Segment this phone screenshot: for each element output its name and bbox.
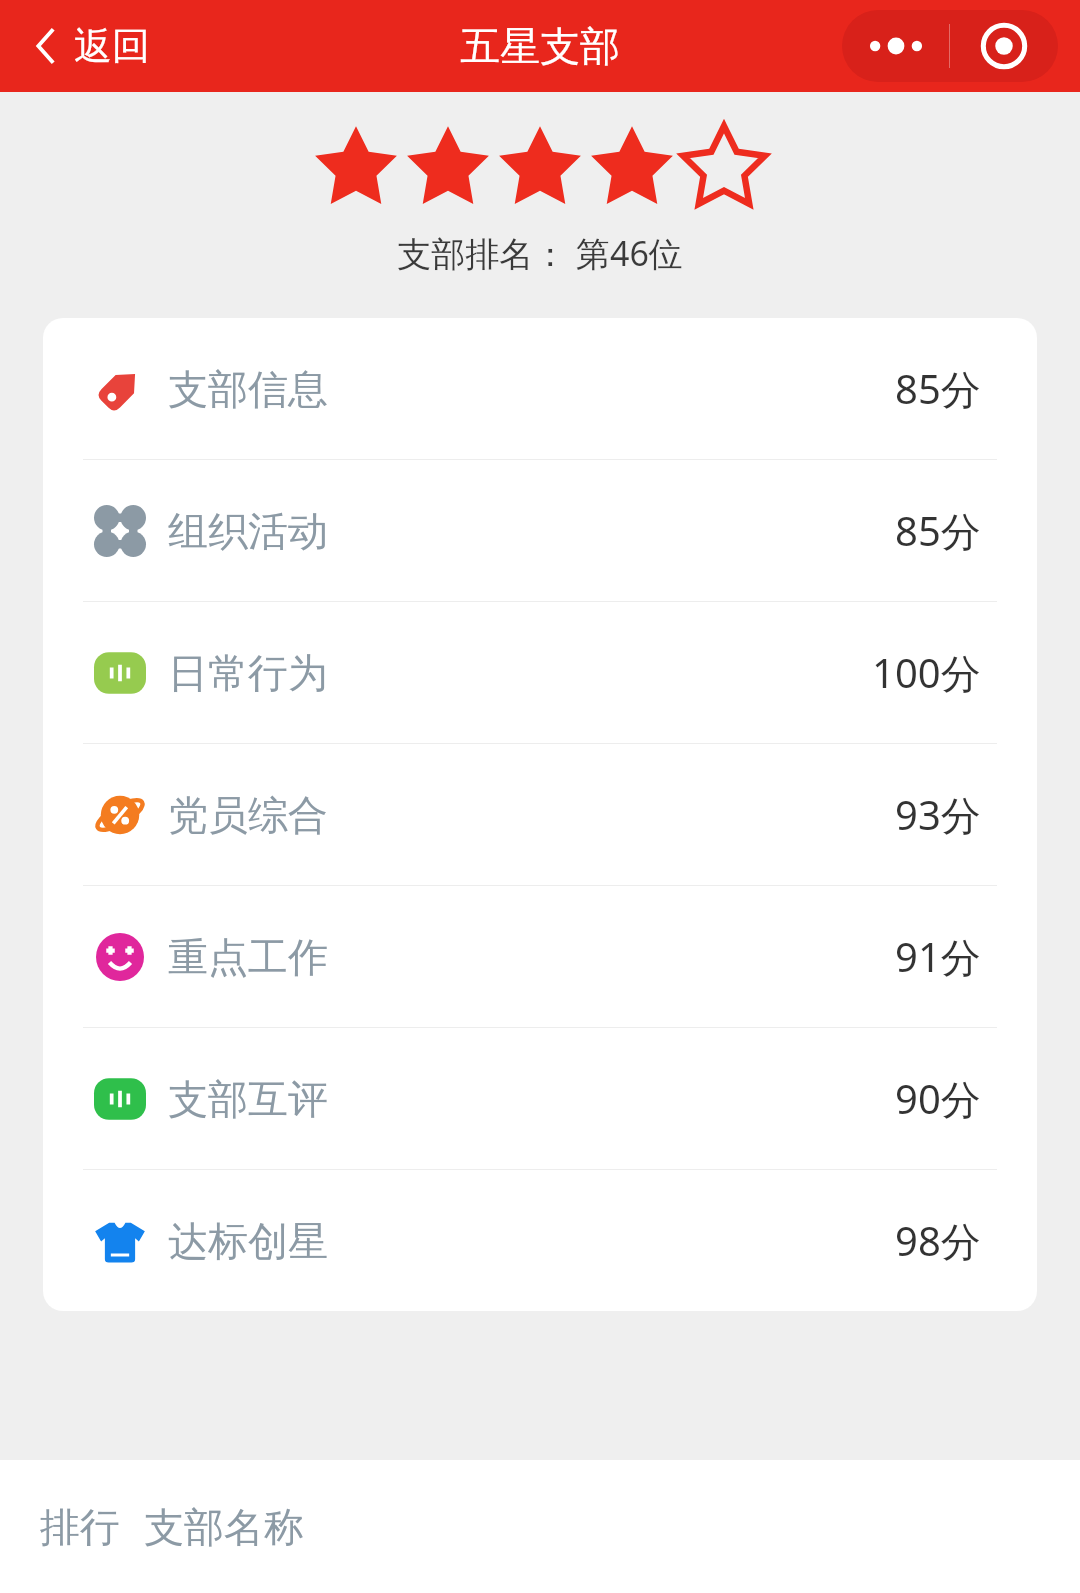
staticText: 98分: [895, 1213, 981, 1268]
staticText: 五星支部: [460, 21, 620, 71]
staticText: 支部排名： 第46位: [0, 230, 1080, 276]
staticText: 组织活动: [168, 506, 328, 556]
staticText: 85分: [895, 503, 981, 558]
button[interactable]: Close mini program: [950, 23, 1058, 69]
staticText: 支部名称: [144, 1502, 304, 1552]
staticText: 达标创星: [168, 1216, 328, 1266]
staticText: 重点工作: [168, 932, 328, 982]
staticText: 85分: [895, 361, 981, 416]
staticText: 93分: [895, 787, 981, 842]
staticText: 支部信息: [168, 364, 328, 414]
staticText: 党员综合: [168, 790, 328, 840]
button[interactable]: 日常行为: [43, 602, 1037, 743]
button[interactable]: More options: [842, 36, 949, 56]
button[interactable]: 支部信息: [43, 318, 1037, 459]
button[interactable]: 组织活动: [43, 460, 1037, 601]
staticText: 日常行为: [168, 648, 328, 698]
staticText: 100分: [872, 645, 981, 700]
staticText: 返回: [74, 22, 150, 70]
staticText: 91分: [895, 929, 981, 984]
button[interactable]: 达标创星: [43, 1170, 1037, 1311]
staticText: 支部互评: [168, 1074, 328, 1124]
button[interactable]: 重点工作: [43, 886, 1037, 1027]
button[interactable]: 返回: [24, 12, 160, 80]
button[interactable]: 党员综合: [43, 744, 1037, 885]
staticText: 排行: [40, 1502, 120, 1552]
staticText: 90分: [895, 1071, 981, 1126]
button[interactable]: 支部互评: [43, 1028, 1037, 1169]
